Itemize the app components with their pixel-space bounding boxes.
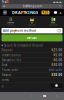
button[interactable]: Browser control bbox=[26, 92, 38, 100]
staticText: TRANSFER bbox=[49, 24, 57, 26]
staticText: ↻ bbox=[59, 5, 61, 8]
button[interactable]: Terms bbox=[0, 78, 64, 82]
staticText: $30.00 bbox=[51, 73, 62, 77]
button[interactable]: Total bbox=[0, 63, 64, 68]
staticText: $5.00 bbox=[53, 53, 62, 57]
staticText: 21+ GAMBLING bbox=[51, 87, 61, 89]
staticText: ⬆ bbox=[31, 94, 33, 97]
staticText: BANK bbox=[51, 22, 55, 24]
staticText: INSTANT bbox=[7, 22, 14, 24]
staticText: 9:41 bbox=[2, 0, 9, 4]
button[interactable]: BANK bbox=[43, 16, 64, 27]
staticText: › bbox=[19, 94, 20, 98]
staticText: Balance bbox=[1, 73, 11, 77]
staticText: Secure & encrypted deposit bbox=[4, 44, 43, 47]
button[interactable]: Balance bbox=[0, 73, 64, 77]
button[interactable]: Browser control bbox=[38, 92, 51, 100]
staticText: Instant Bonus bbox=[1, 53, 20, 57]
button[interactable]: Promo code bbox=[0, 68, 64, 73]
staticText: draftkings.com bbox=[22, 4, 41, 8]
staticText: DEPOSIT bbox=[26, 36, 37, 40]
button[interactable]: Menu bbox=[1, 9, 8, 16]
button[interactable]: DK bbox=[21, 16, 43, 27]
staticText: Add code bbox=[48, 68, 62, 72]
staticText: ‹ bbox=[6, 94, 7, 98]
staticText: DRAFTKINGS bbox=[12, 10, 38, 15]
staticText: DOLLARS bbox=[28, 24, 35, 26]
staticText: ▬▬▬ bbox=[53, 1, 62, 4]
staticText: ᴀᴀ bbox=[3, 4, 5, 8]
staticText: DK bbox=[31, 22, 33, 24]
staticText: Add payment method bbox=[3, 29, 36, 32]
button[interactable]: INSTANT bbox=[0, 16, 21, 27]
staticText: 📖 bbox=[43, 94, 46, 97]
button[interactable]: Balance bbox=[41, 11, 49, 14]
button[interactable]: Messages bbox=[53, 9, 58, 16]
button[interactable]: Notifications bbox=[58, 9, 62, 16]
staticText: Terms bbox=[1, 78, 8, 82]
staticText: ⧉ bbox=[57, 95, 59, 97]
staticText: Total bbox=[1, 63, 7, 67]
staticText: ▲ bbox=[59, 11, 61, 14]
button[interactable]: Instant Bonus bbox=[0, 53, 64, 58]
button[interactable]: Deposit bbox=[0, 48, 64, 53]
staticText: $25.00 bbox=[51, 48, 62, 52]
button[interactable]: Browser control bbox=[51, 92, 64, 100]
staticText: Deposit bbox=[1, 48, 12, 52]
staticText: $0.00 bbox=[53, 58, 62, 62]
button[interactable]: DEPOSIT bbox=[1, 34, 62, 41]
button[interactable]: Transaction fee bbox=[0, 58, 64, 63]
staticText: Promo code bbox=[1, 68, 18, 72]
staticText: $30.00 bbox=[51, 63, 62, 67]
staticText: PAYPAL bbox=[8, 24, 14, 26]
staticText: $25 bbox=[42, 11, 48, 14]
staticText: Transaction fee bbox=[1, 58, 21, 62]
